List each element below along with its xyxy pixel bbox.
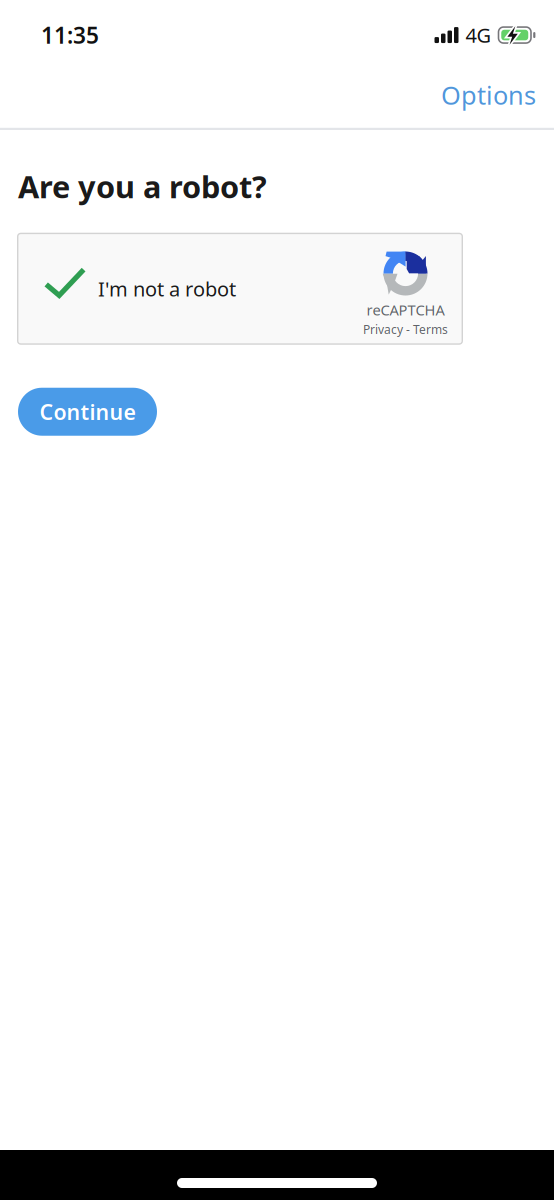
staticText: reCAPTCHA [366,300,444,319]
staticText: Privacy - Terms [363,321,448,337]
staticText: Continue [39,398,135,426]
staticText: 11:35 [41,20,99,50]
staticText: 4G [465,22,491,48]
staticText: Options [441,78,536,112]
staticText: I'm not a robot [98,275,236,302]
button[interactable]: Options [429,64,548,122]
button[interactable]: I'm not a robot [17,233,463,345]
staticText: Are you a robot? [18,166,267,207]
button[interactable]: Continue [18,388,157,436]
